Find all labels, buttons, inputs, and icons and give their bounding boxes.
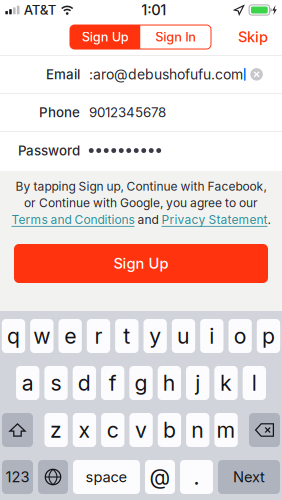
button[interactable]: b [158,413,181,447]
button[interactable]: t [115,319,138,353]
staticText: g [134,370,147,396]
staticText: @ [149,464,170,490]
button[interactable]: o [228,319,252,353]
staticText: Skip [238,28,268,46]
button[interactable]: a [16,366,39,400]
button[interactable]: Skip [225,22,281,52]
staticText: d [78,370,91,396]
staticText: b [163,417,176,443]
staticText: . [193,464,199,490]
button[interactable]: e [58,319,82,353]
button[interactable]: Sign In [140,25,211,49]
button[interactable]: Sign Up [14,244,268,283]
staticText: h [163,370,176,396]
button[interactable]: Shift [2,413,33,447]
button[interactable]: h [158,366,181,400]
staticText: a [22,370,34,396]
staticText: Sign Up [82,29,129,45]
staticText: z [50,417,62,443]
button[interactable]: x [73,413,96,447]
button[interactable]: i [200,319,223,353]
staticText: By tapping Sign up, Continue with Facebo… [15,179,266,194]
staticText: y [149,323,161,349]
button[interactable]: q [2,319,25,353]
staticText: . [267,212,270,227]
button[interactable]: k [214,366,238,400]
staticText: r [94,323,102,349]
staticText: :aro@debushofufu.com [89,66,243,83]
button[interactable]: g [129,366,153,400]
staticText: w [33,323,50,349]
staticText: 123 [5,468,29,486]
button[interactable]: r [87,319,110,353]
staticText: or Continue with Google, you agree to ou… [24,196,258,210]
button[interactable]: p [257,319,280,353]
staticText: c [107,417,119,443]
staticText: AT&T [24,2,57,18]
staticText: n [191,417,204,443]
staticText: m [217,417,236,443]
staticText: s [50,370,61,396]
staticText: 1:01 [141,1,166,19]
staticText: j [195,370,200,396]
button[interactable]: Delete [249,413,280,447]
button[interactable]: Switch keyboard [38,460,68,494]
staticText: Sign In [155,29,196,45]
staticText: Phone [39,104,80,120]
button[interactable]: c [101,413,124,447]
button[interactable]: f [101,366,124,400]
staticText: t [123,323,130,349]
button[interactable]: Sign Up [70,25,140,49]
button[interactable]: 123 [2,460,33,494]
staticText: l [252,370,257,396]
button[interactable]: w [30,319,53,353]
staticText: f [109,370,117,396]
staticText: Email [46,66,80,82]
button[interactable]: j [186,366,209,400]
button[interactable]: v [129,413,153,447]
button[interactable]: @ [145,460,175,494]
staticText: Terms and Conditions [11,212,134,227]
button[interactable]: Privacy Statement [161,212,267,227]
button[interactable]: m [214,413,238,447]
staticText: 9012345678 [89,104,166,120]
button[interactable]: d [73,366,96,400]
button[interactable]: n [186,413,209,447]
staticText: v [135,417,147,443]
staticText: i [209,323,214,349]
button[interactable]: Next [218,460,280,494]
button[interactable]: . [180,460,213,494]
staticText: k [220,370,232,396]
staticText: e [64,323,76,349]
button[interactable]: u [172,319,195,353]
staticText: and [134,212,161,227]
button[interactable]: y [143,319,167,353]
button[interactable]: Terms and Conditions [11,212,134,227]
button[interactable]: space [73,460,140,494]
staticText: x [78,417,90,443]
staticText: Privacy Statement [161,212,267,227]
button[interactable]: z [44,413,68,447]
staticText: p [262,323,275,349]
staticText: o [234,323,247,349]
button[interactable]: s [44,366,68,400]
staticText: q [7,323,20,349]
button[interactable]: l [243,366,266,400]
staticText: space [85,468,127,486]
staticText: u [177,323,190,349]
staticText: Next [233,468,265,486]
staticText: Sign Up [113,255,168,272]
staticText: Password [18,142,80,159]
